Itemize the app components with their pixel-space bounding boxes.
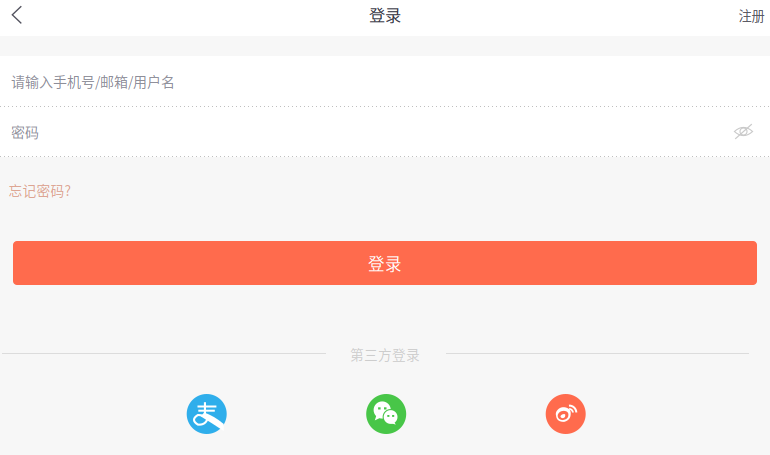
button[interactable]: 微信登录 xyxy=(360,388,412,440)
button[interactable]: 注册 xyxy=(731,0,770,31)
button[interactable]: 忘记密码? xyxy=(8,175,72,205)
staticText: 请输入手机号/邮箱/用户名 xyxy=(11,71,175,91)
button[interactable]: 显示密码 xyxy=(725,113,761,149)
staticText: 注册 xyxy=(738,6,764,25)
staticText: 第三方登录 xyxy=(350,344,420,364)
button[interactable]: 返回 xyxy=(0,0,34,31)
staticText: 登录 xyxy=(368,251,402,275)
button[interactable]: 支付宝登录 xyxy=(181,388,233,440)
button[interactable]: 登录 xyxy=(13,241,757,285)
button[interactable]: 微博登录 xyxy=(540,388,592,440)
staticText: 密码 xyxy=(11,121,39,142)
staticText: 登录 xyxy=(369,2,401,26)
staticText: 忘记密码? xyxy=(8,180,71,200)
